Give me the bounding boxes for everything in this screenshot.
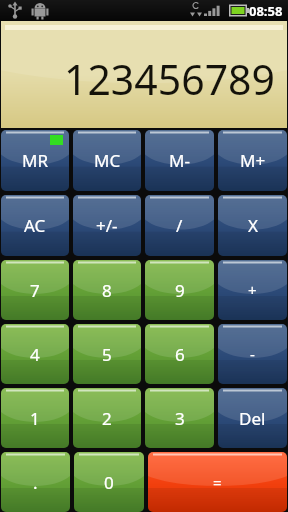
button[interactable]: M-	[145, 130, 214, 191]
button[interactable]: -	[218, 324, 287, 384]
button[interactable]: 5	[73, 324, 141, 384]
staticText: 8	[102, 279, 112, 302]
button[interactable]: X	[218, 195, 287, 256]
staticText: =	[213, 472, 222, 492]
button[interactable]: +/-	[73, 195, 141, 256]
button[interactable]: M+	[218, 130, 287, 191]
staticText: Del	[239, 407, 266, 430]
button[interactable]: 7	[1, 260, 69, 320]
staticText: 0	[104, 471, 114, 494]
button[interactable]: 1	[1, 388, 69, 448]
staticText: 5	[102, 343, 112, 366]
staticText: 6	[175, 343, 185, 366]
staticText: 7	[30, 279, 40, 302]
button[interactable]: =	[148, 452, 287, 512]
staticText: MC	[94, 149, 121, 172]
staticText: M+	[240, 149, 266, 172]
staticText: X	[248, 214, 258, 237]
button[interactable]: +	[218, 260, 287, 320]
button[interactable]: MR	[1, 130, 69, 191]
staticText: /	[176, 214, 183, 237]
button[interactable]: 6	[145, 324, 214, 384]
staticText: -	[250, 344, 255, 364]
staticText: 123456789	[11, 51, 275, 107]
staticText: 2	[102, 407, 112, 430]
button[interactable]: .	[1, 452, 70, 512]
button[interactable]: 0	[74, 452, 144, 512]
button[interactable]: 2	[73, 388, 141, 448]
button[interactable]: 8	[73, 260, 141, 320]
staticText: 4	[30, 343, 40, 366]
staticText: 1	[30, 407, 40, 430]
button[interactable]: /	[145, 195, 214, 256]
staticText: +	[248, 280, 257, 300]
button[interactable]: 4	[1, 324, 69, 384]
staticText: 9	[175, 279, 185, 302]
button[interactable]: AC	[1, 195, 69, 256]
staticText: 08:58	[249, 2, 283, 20]
staticText: .	[33, 471, 38, 494]
staticText: AC	[24, 214, 46, 237]
button[interactable]: Del	[218, 388, 287, 448]
staticText: MR	[22, 149, 48, 172]
button[interactable]: MC	[73, 130, 141, 191]
button[interactable]: 3	[145, 388, 214, 448]
staticText: M-	[169, 149, 190, 172]
staticText: 3	[175, 407, 185, 430]
staticText: +/-	[96, 214, 118, 237]
button[interactable]: 9	[145, 260, 214, 320]
